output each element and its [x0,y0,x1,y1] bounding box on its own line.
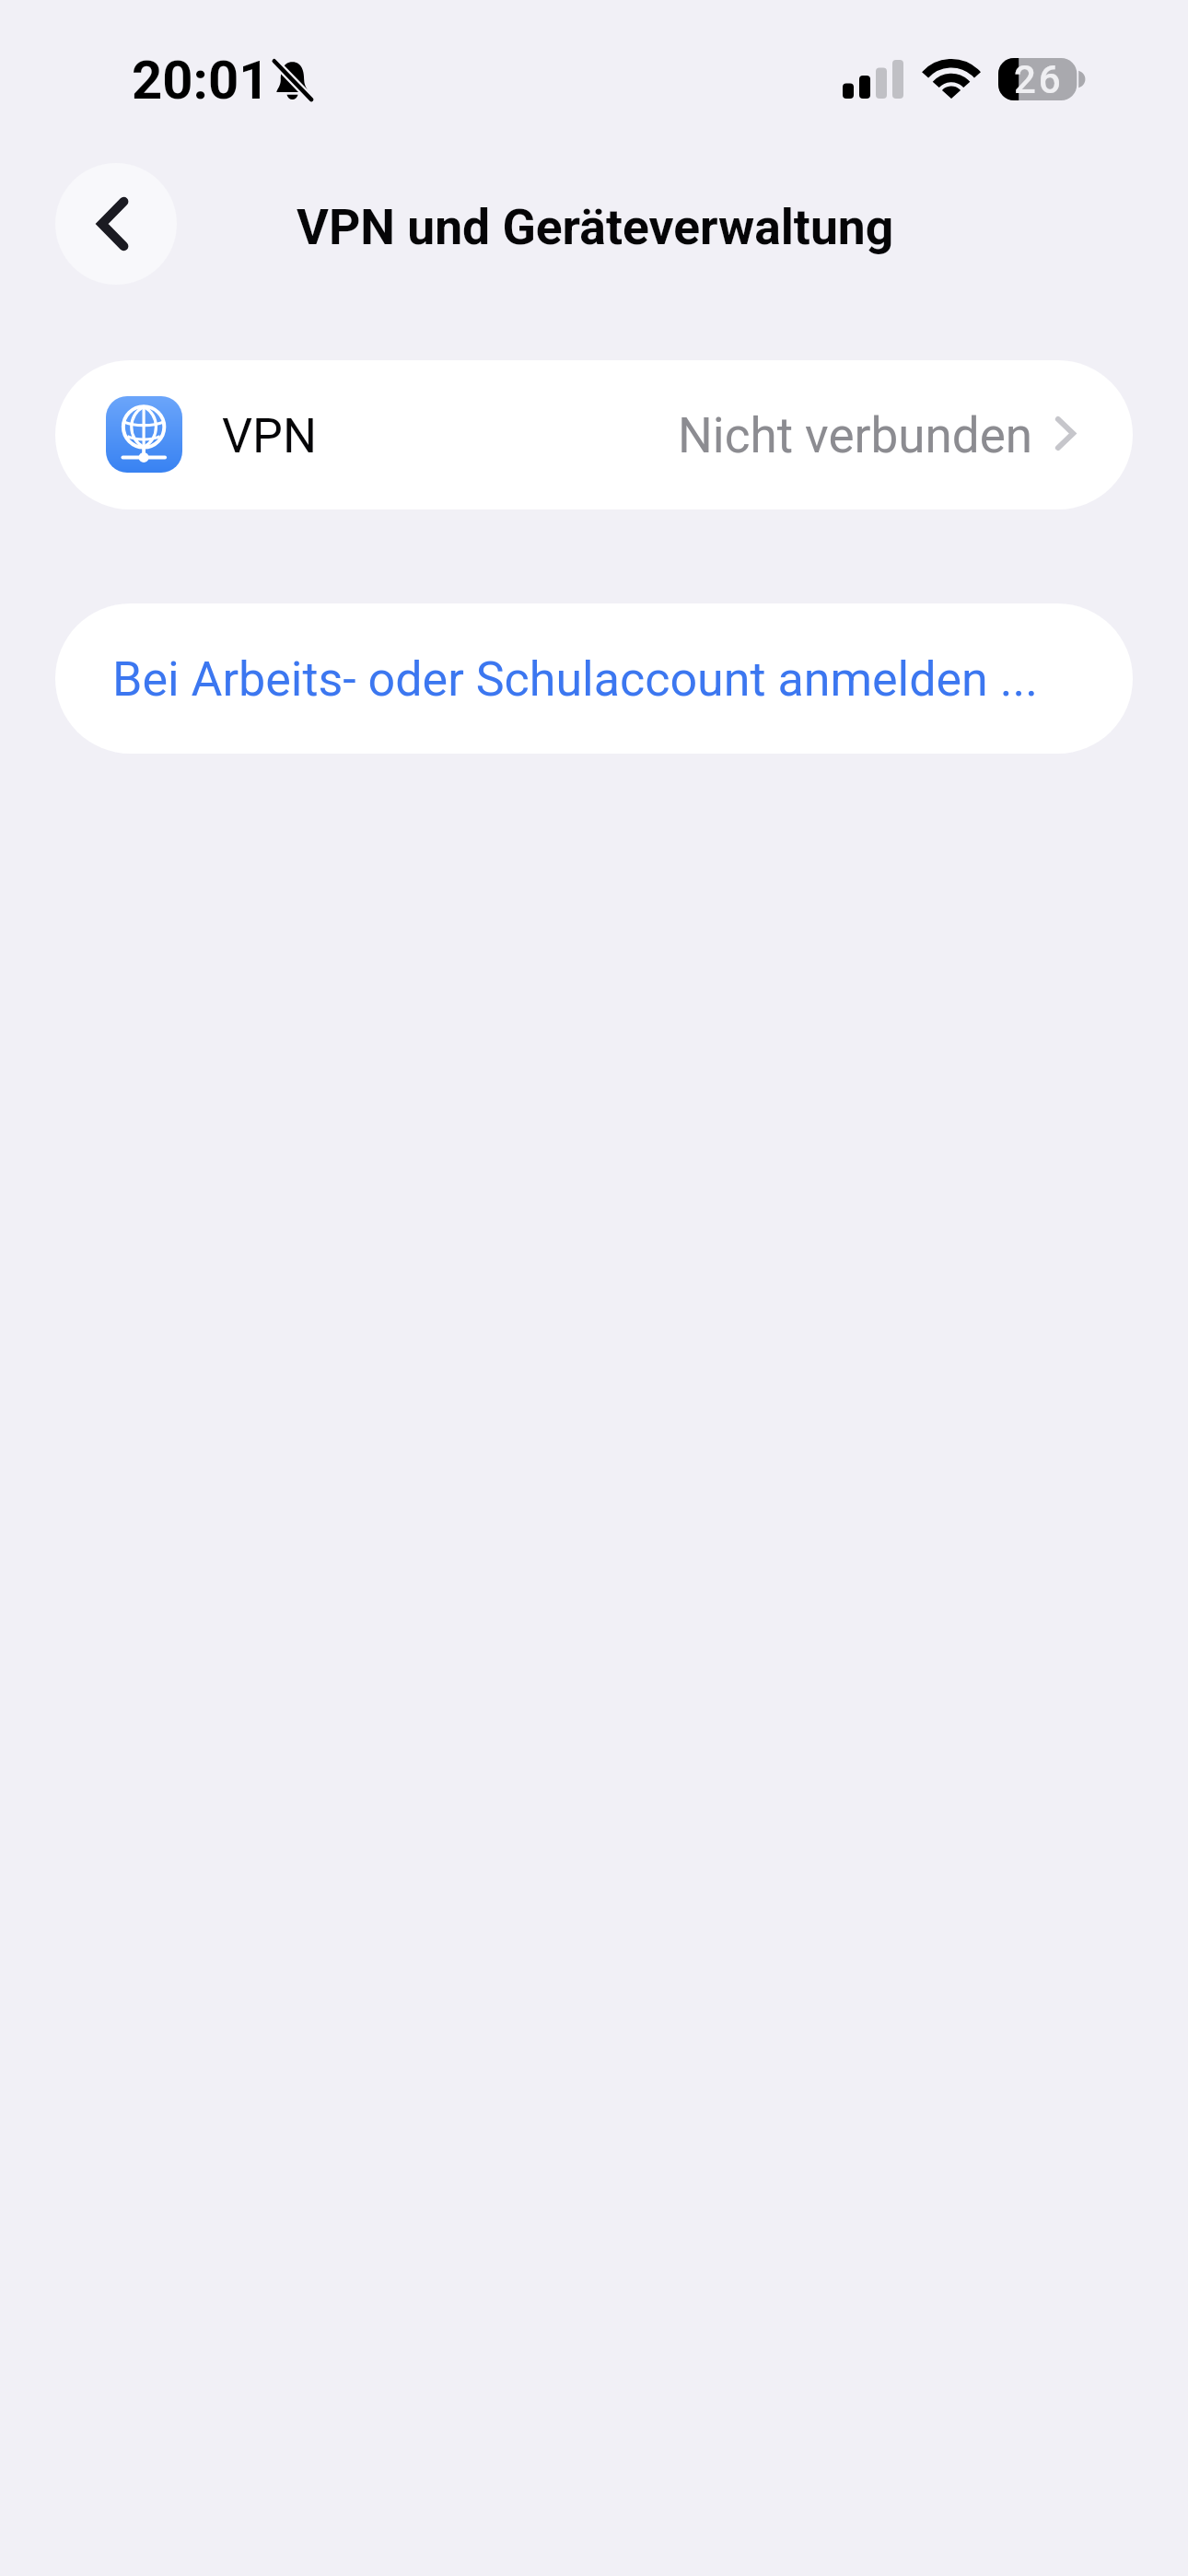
staticText: VPN [222,408,318,464]
button[interactable]: Zurück [55,163,177,285]
staticText: Bei Arbeits- oder Schulaccount anmelden … [112,651,1038,708]
staticText: 20:01 [132,49,270,111]
staticText: 26 [1014,57,1064,100]
staticText: VPN und Geräteverwaltung [297,198,894,256]
button[interactable]: VPN [55,360,1133,509]
button[interactable]: Bei Arbeits- oder Schulaccount anmelden … [55,603,1133,754]
staticText: Nicht verbunden [678,407,1033,464]
